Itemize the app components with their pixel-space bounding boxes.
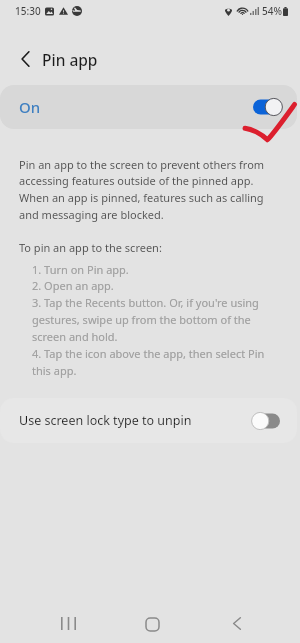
button[interactable]: Pin app, on (253, 98, 282, 116)
staticText: Pin app (42, 49, 98, 70)
staticText: To pin an app to the screen: (19, 240, 162, 255)
staticText: Pin an app to the screen to prevent othe… (19, 157, 276, 222)
staticText: On (19, 97, 41, 117)
button[interactable]: Use screen lock type to unpin (0, 398, 297, 443)
staticText: Use screen lock type to unpin (19, 412, 192, 429)
button[interactable]: Navigate up (13, 47, 37, 71)
button[interactable]: Home (130, 602, 174, 643)
button[interactable]: On (0, 85, 297, 129)
button[interactable]: Back (215, 601, 259, 643)
button[interactable]: Recents (46, 601, 90, 643)
button[interactable]: Use screen lock type to unpin, off (252, 412, 280, 430)
staticText: 15:30 (15, 4, 41, 18)
staticText: 54% (262, 4, 282, 18)
staticText: 1. Turn on Pin app. 2. Open an app. 3. T… (32, 262, 276, 379)
